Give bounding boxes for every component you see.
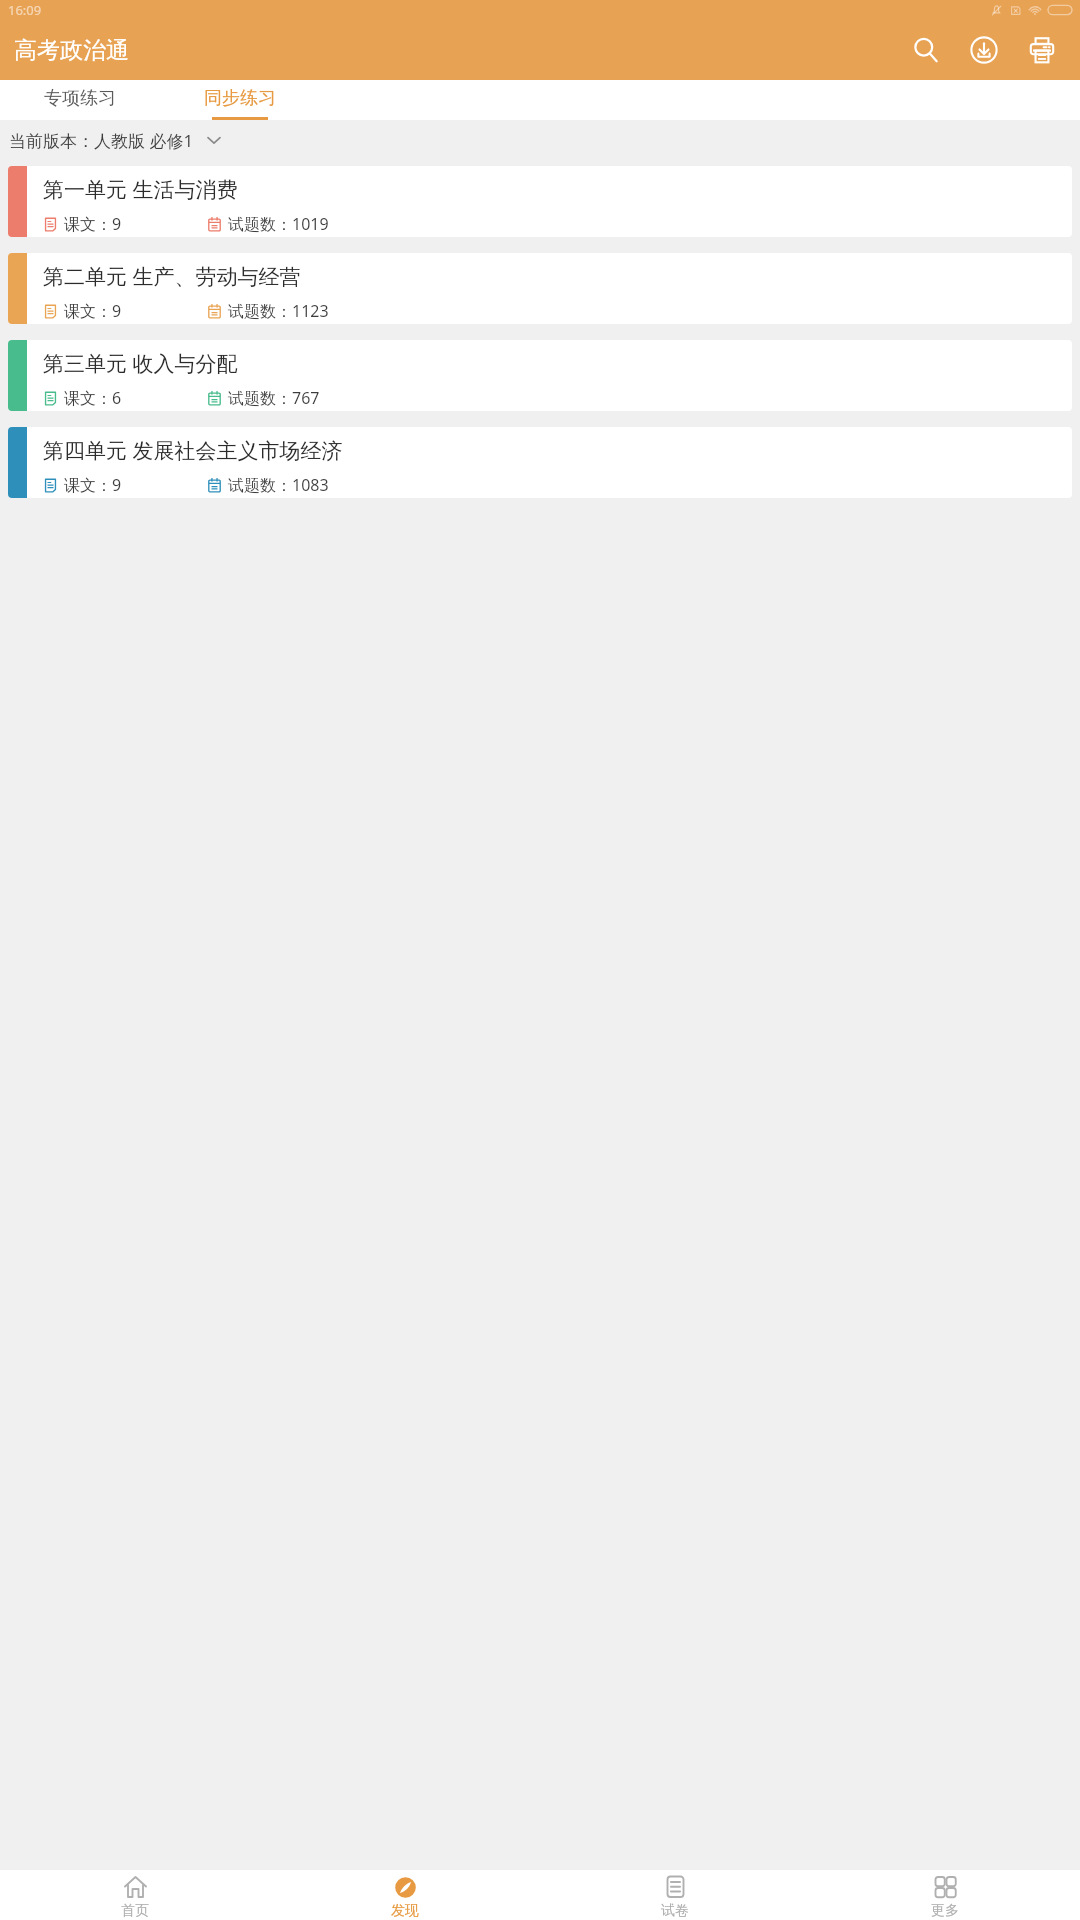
- staticText: 当前版本：人教版 必修1: [9, 129, 194, 152]
- staticText: 更多: [931, 1902, 959, 1920]
- staticText: 课文：9: [64, 300, 122, 322]
- staticText: 课文：9: [64, 474, 122, 496]
- button[interactable]: Print: [1018, 26, 1066, 74]
- button[interactable]: 第一单元 生活与消费: [8, 166, 1072, 237]
- staticText: 专项练习: [44, 87, 116, 110]
- button[interactable]: 试卷: [540, 1870, 810, 1920]
- staticText: 第四单元 发展社会主义市场经济: [43, 436, 343, 465]
- button[interactable]: 首页: [0, 1870, 270, 1920]
- button[interactable]: 第四单元 发展社会主义市场经济: [8, 427, 1072, 498]
- button[interactable]: 同步练习: [160, 80, 320, 120]
- button[interactable]: 第二单元 生产、劳动与经营: [8, 253, 1072, 324]
- staticText: 试题数：1083: [228, 474, 329, 496]
- button[interactable]: Search: [902, 26, 950, 74]
- button[interactable]: 发现: [270, 1870, 540, 1920]
- staticText: 试题数：767: [228, 387, 320, 409]
- button[interactable]: 当前版本：人教版 必修1: [0, 120, 1080, 160]
- staticText: 试题数：1019: [228, 213, 329, 235]
- button[interactable]: 第三单元 收入与分配: [8, 340, 1072, 411]
- staticText: 试卷: [661, 1902, 689, 1920]
- staticText: 同步练习: [204, 87, 276, 110]
- staticText: 试题数：1123: [228, 300, 329, 322]
- staticText: 课文：9: [64, 213, 122, 235]
- button[interactable]: 专项练习: [0, 80, 160, 120]
- staticText: 发现: [391, 1902, 419, 1920]
- staticText: 第二单元 生产、劳动与经营: [43, 262, 301, 291]
- button[interactable]: 更多: [810, 1870, 1080, 1920]
- staticText: 课文：6: [64, 387, 122, 409]
- button[interactable]: Download: [960, 26, 1008, 74]
- staticText: 第三单元 收入与分配: [43, 349, 238, 378]
- staticText: 高考政治通: [14, 36, 129, 65]
- staticText: 首页: [121, 1902, 149, 1920]
- staticText: 16:09: [8, 1, 42, 19]
- staticText: 第一单元 生活与消费: [43, 175, 238, 204]
